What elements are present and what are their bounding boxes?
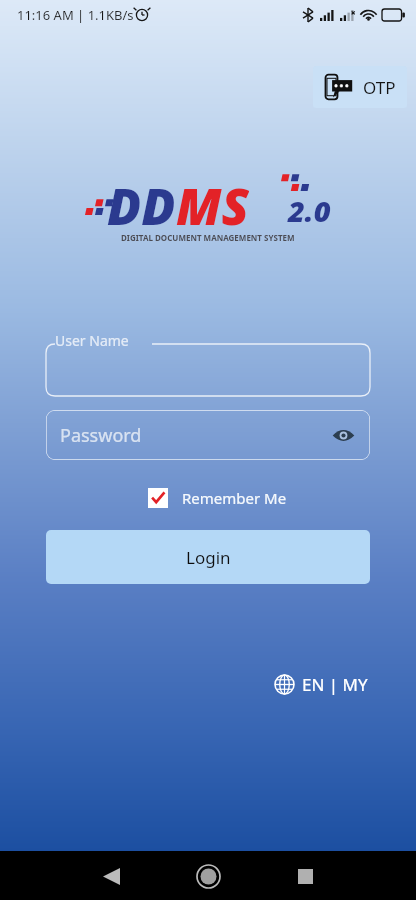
staticText: EN | MY xyxy=(302,673,368,696)
button[interactable]: Recent apps xyxy=(288,859,322,893)
staticText: User Name xyxy=(55,331,129,350)
staticText: DIGITAL DOCUMENT MANAGEMENT SYSTEM xyxy=(121,232,295,243)
staticText: 11:16 AM | 1.1KB/s xyxy=(17,6,134,24)
staticText: Remember Me xyxy=(182,488,287,508)
staticText: MS xyxy=(176,172,249,230)
staticText: 2.0 xyxy=(288,191,331,230)
staticText: Login xyxy=(186,546,231,569)
button[interactable]: Show password xyxy=(326,418,360,452)
button[interactable]: OTP xyxy=(313,66,407,108)
button[interactable]: Password xyxy=(46,410,370,460)
button[interactable] xyxy=(46,344,370,396)
staticText: OTP xyxy=(363,76,396,99)
staticText: DD xyxy=(107,172,176,230)
button[interactable]: Login xyxy=(46,530,370,584)
button[interactable]: Back xyxy=(94,859,128,893)
button[interactable]: EN | MY xyxy=(272,671,370,698)
button[interactable]: Remember Me xyxy=(144,484,291,512)
staticText: Password xyxy=(60,423,142,448)
button[interactable]: Home xyxy=(189,857,227,895)
